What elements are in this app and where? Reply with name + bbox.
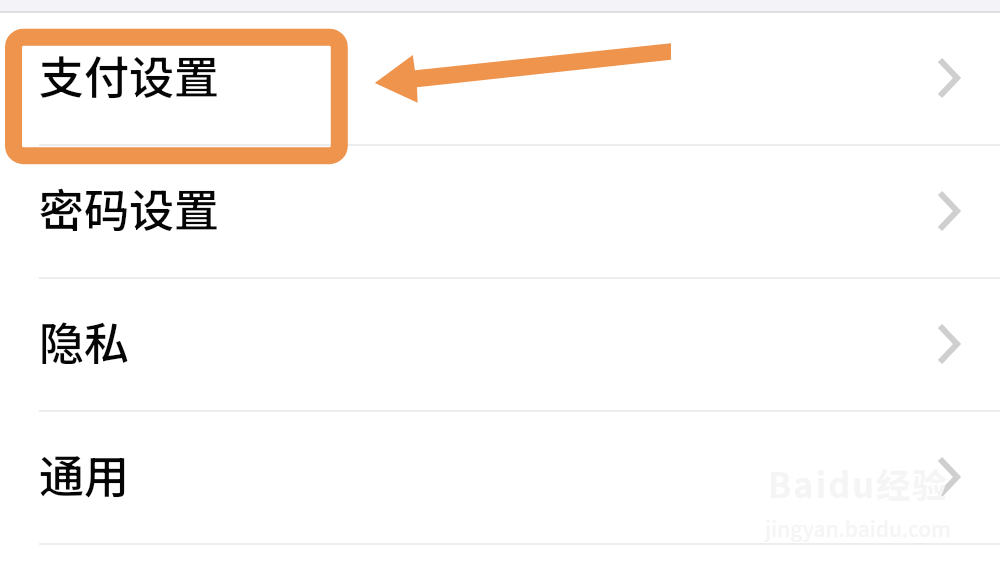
button[interactable]: 密码设置 xyxy=(0,146,1000,279)
staticText: 隐私 xyxy=(39,308,130,373)
other: Open 支付设置 xyxy=(937,57,960,99)
staticText: 支付设置 xyxy=(39,42,220,107)
button[interactable]: 隐私 xyxy=(0,279,1000,412)
button[interactable]: 通用 xyxy=(0,412,1000,545)
staticText: Baidu经验 xyxy=(768,459,949,508)
other: Open 隐私 xyxy=(937,323,960,365)
button[interactable]: 支付设置 xyxy=(0,13,1000,146)
staticText: jingyan.baidu.com xyxy=(765,513,951,543)
staticText: 通用 xyxy=(39,441,130,506)
other: Open 密码设置 xyxy=(937,190,960,232)
other: Open 通用 xyxy=(937,456,960,498)
staticText: 密码设置 xyxy=(39,175,220,240)
